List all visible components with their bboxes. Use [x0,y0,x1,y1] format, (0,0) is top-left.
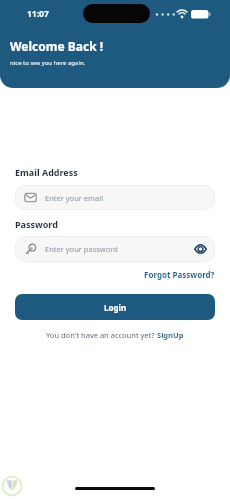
staticText: Login [104,302,127,313]
button[interactable]: Enter your email [15,185,215,210]
staticText: 11:07 [27,8,49,20]
button[interactable]: Enter your password [15,236,215,262]
staticText: You don't have an account yet? [46,330,157,340]
staticText: Password [15,218,58,230]
button[interactable]: Forgot Password? [144,269,215,280]
staticText: Email Address [15,166,78,178]
button[interactable]: Login [15,294,215,320]
button[interactable]: SignUp [157,330,184,340]
staticText: nice to see you here again. [10,59,86,67]
staticText: Welcome Back ! [10,38,104,54]
button[interactable] [194,243,207,255]
staticText: Enter your email [45,193,104,203]
staticText: Enter your password [45,244,118,254]
